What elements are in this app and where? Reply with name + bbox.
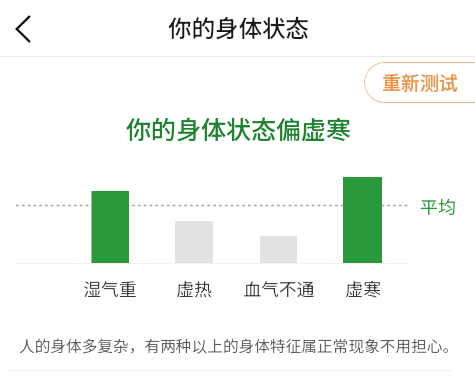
staticText: 重新测试	[382, 68, 459, 96]
staticText: 虚寒	[345, 275, 381, 301]
staticText: 血气不通	[243, 275, 315, 301]
button[interactable]: 重新测试	[364, 62, 475, 103]
staticText: 湿气重	[83, 275, 137, 301]
staticText: 虚热	[176, 275, 212, 301]
staticText: 你的身体状态偏虚寒	[1, 110, 475, 146]
staticText: 人的身体多复杂，有两种以上的身体特征属正常现象不用担心。	[19, 334, 459, 357]
staticText: 平均	[420, 193, 456, 219]
staticText: 你的身体状态	[168, 10, 309, 44]
button[interactable]: Back	[0, 6, 46, 52]
